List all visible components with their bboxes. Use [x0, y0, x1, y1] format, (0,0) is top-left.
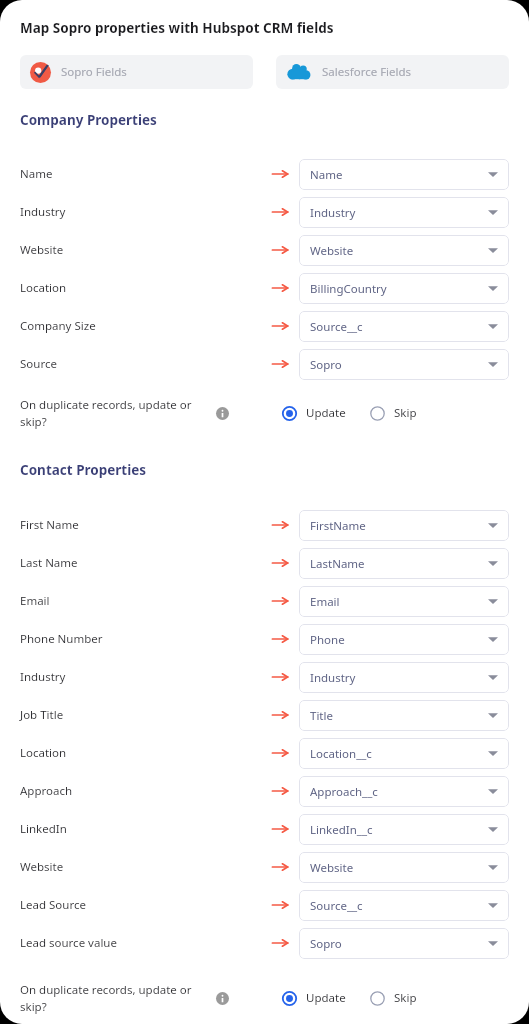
staticText: Last Name: [20, 555, 78, 571]
button[interactable]: Location__c: [299, 738, 509, 769]
staticText: Approach__c: [310, 784, 378, 800]
staticText: Contact Properties: [20, 461, 147, 479]
staticText: Name: [310, 167, 343, 183]
staticText: Phone: [310, 632, 345, 648]
button[interactable]: Phone Number: [20, 620, 509, 658]
staticText: Skip: [394, 990, 417, 1006]
staticText: Location__c: [310, 746, 372, 762]
staticText: Email: [20, 593, 50, 609]
staticText: LastName: [310, 556, 365, 572]
staticText: Name: [20, 166, 53, 182]
button[interactable]: Name: [20, 155, 509, 193]
staticText: Phone Number: [20, 631, 103, 647]
staticText: Skip: [394, 405, 417, 421]
staticText: Sopro: [310, 357, 342, 373]
button[interactable]: Last Name: [20, 544, 509, 582]
button[interactable]: Website: [20, 848, 509, 886]
button[interactable]: LastName: [299, 548, 509, 579]
button[interactable]: Salesforce Fields: [276, 55, 509, 89]
button[interactable]: Source: [20, 345, 509, 383]
button[interactable]: More information: [216, 407, 229, 420]
staticText: BillingCountry: [310, 281, 387, 297]
staticText: Update: [306, 405, 346, 421]
staticText: FirstName: [310, 518, 366, 534]
staticText: Source__c: [310, 898, 363, 914]
button[interactable]: BillingCountry: [299, 273, 509, 304]
staticText: Source: [20, 356, 57, 372]
button[interactable]: Industry: [20, 658, 509, 696]
staticText: Salesforce Fields: [322, 64, 412, 80]
button[interactable]: Location: [20, 734, 509, 772]
staticText: Industry: [20, 669, 66, 685]
staticText: LinkedIn__c: [310, 822, 373, 838]
staticText: Website: [20, 859, 64, 875]
button[interactable]: Email: [20, 582, 509, 620]
button[interactable]: Industry: [299, 197, 509, 228]
button[interactable]: LinkedIn__c: [299, 814, 509, 845]
staticText: Industry: [310, 670, 356, 686]
button[interactable]: Source__c: [299, 890, 509, 921]
staticText: Approach: [20, 783, 73, 799]
staticText: Job Title: [20, 707, 64, 723]
staticText: Map Sopro properties with Hubspot CRM fi…: [20, 19, 334, 37]
button[interactable]: Name: [299, 159, 509, 190]
button[interactable]: Industry: [20, 193, 509, 231]
staticText: Industry: [310, 205, 356, 221]
button[interactable]: Sopro: [299, 349, 509, 380]
staticText: Source__c: [310, 319, 363, 335]
staticText: On duplicate records, update or skip?: [20, 982, 206, 1014]
button[interactable]: Industry: [299, 662, 509, 693]
button[interactable]: First Name: [20, 506, 509, 544]
button[interactable]: Job Title: [20, 696, 509, 734]
staticText: Location: [20, 745, 67, 761]
staticText: Lead source value: [20, 935, 117, 951]
button[interactable]: Website: [20, 231, 509, 269]
staticText: Email: [310, 594, 340, 610]
staticText: Industry: [20, 204, 66, 220]
button[interactable]: Sopro Fields: [20, 55, 253, 89]
button[interactable]: Location: [20, 269, 509, 307]
button[interactable]: Phone: [299, 624, 509, 655]
staticText: Sopro Fields: [61, 64, 127, 80]
button[interactable]: Approach: [20, 772, 509, 810]
staticText: Company Size: [20, 318, 96, 334]
staticText: Company Properties: [20, 111, 157, 129]
button[interactable]: Update: [282, 405, 346, 421]
staticText: First Name: [20, 517, 79, 533]
button[interactable]: More information: [216, 992, 229, 1005]
staticText: Location: [20, 280, 67, 296]
button[interactable]: Title: [299, 700, 509, 731]
button[interactable]: Website: [299, 235, 509, 266]
button[interactable]: Update: [282, 990, 346, 1006]
staticText: Sopro: [310, 936, 342, 952]
button[interactable]: Lead source value: [20, 924, 509, 962]
button[interactable]: Company Size: [20, 307, 509, 345]
staticText: Update: [306, 990, 346, 1006]
staticText: Website: [310, 243, 354, 259]
staticText: Lead Source: [20, 897, 86, 913]
staticText: Title: [310, 708, 333, 724]
button[interactable]: Website: [299, 852, 509, 883]
button[interactable]: Approach__c: [299, 776, 509, 807]
staticText: LinkedIn: [20, 821, 67, 837]
button[interactable]: Skip: [370, 990, 417, 1006]
button[interactable]: Email: [299, 586, 509, 617]
button[interactable]: Source__c: [299, 311, 509, 342]
staticText: Website: [20, 242, 64, 258]
staticText: On duplicate records, update or skip?: [20, 397, 206, 429]
button[interactable]: Lead Source: [20, 886, 509, 924]
button[interactable]: Skip: [370, 405, 417, 421]
button[interactable]: Sopro: [299, 928, 509, 959]
staticText: Website: [310, 860, 354, 876]
button[interactable]: FirstName: [299, 510, 509, 541]
button[interactable]: LinkedIn: [20, 810, 509, 848]
